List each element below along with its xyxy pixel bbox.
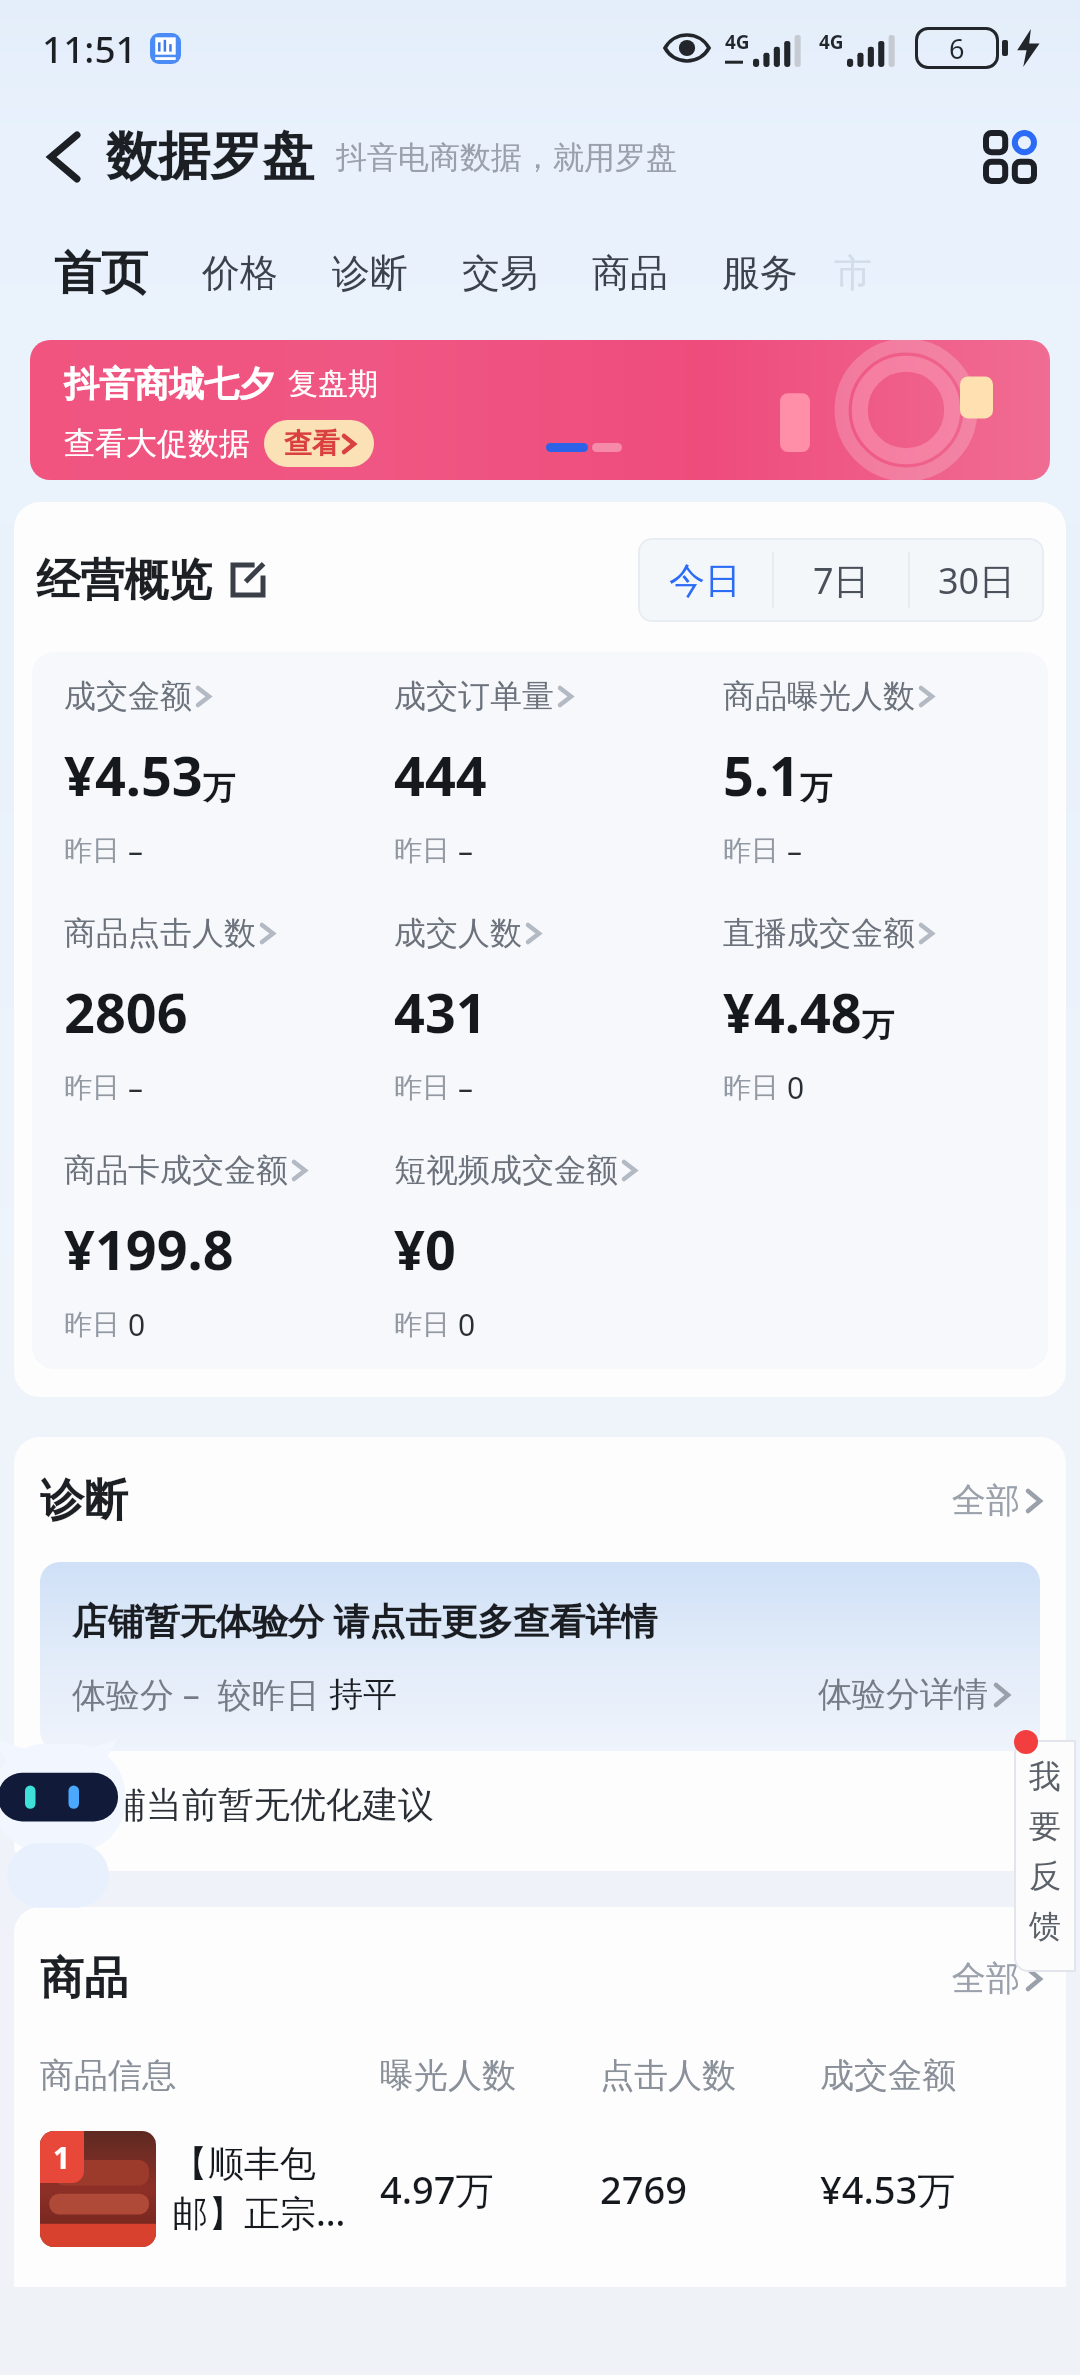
staticText: ¥4.53万 xyxy=(820,2163,1040,2215)
staticText: 昨日 xyxy=(64,833,120,868)
button[interactable]: 30日 xyxy=(910,538,1044,622)
staticText: 431 xyxy=(394,975,487,1049)
staticText: 点击人数 xyxy=(600,2054,820,2097)
staticText: 我 xyxy=(1029,1756,1061,1796)
staticText: 今日 xyxy=(669,558,741,603)
staticText: 商品 xyxy=(592,249,668,297)
staticText: – xyxy=(128,1067,143,1108)
staticText: 复盘期 xyxy=(288,365,378,403)
staticText: 昨日 xyxy=(394,1307,450,1342)
button[interactable]: 价格 xyxy=(182,239,298,307)
staticText: 昨日 xyxy=(394,833,450,868)
staticText: 要 xyxy=(1029,1806,1061,1846)
staticText: 商品曝光人数 xyxy=(723,676,915,716)
staticText: 商品卡成交金额 xyxy=(64,1150,288,1190)
button[interactable]: 今日 xyxy=(638,538,772,622)
staticText: 万 xyxy=(203,768,235,808)
staticText: 7日 xyxy=(813,556,870,605)
staticText: 诊断 xyxy=(40,1473,128,1528)
staticText: 交易 xyxy=(462,249,538,297)
staticText: 查看大促数据 xyxy=(64,424,250,463)
staticText: 抖音商城七夕 xyxy=(64,362,274,406)
button[interactable]: 7日 xyxy=(774,538,908,622)
button[interactable]: Edit xyxy=(226,558,270,602)
staticText: 成交人数 xyxy=(394,913,522,953)
staticText: 查看 xyxy=(284,426,340,461)
button[interactable]: 商品 xyxy=(572,239,688,307)
staticText: 1 xyxy=(53,2137,71,2178)
staticText: 商品 xyxy=(40,1951,128,2006)
staticText: 持平 xyxy=(329,1673,397,1716)
staticText: 首页 xyxy=(54,244,148,303)
staticText: 5.1 xyxy=(723,738,800,812)
button[interactable]: 我 xyxy=(1014,1740,1076,1972)
staticText: – xyxy=(458,830,473,871)
staticText: 全部 xyxy=(952,1479,1020,1522)
staticText: – xyxy=(128,830,143,871)
staticText: ¥4.53 xyxy=(64,738,203,812)
staticText: 商品点击人数 xyxy=(64,913,256,953)
staticText: 4G xyxy=(819,29,844,55)
staticText: 0 xyxy=(787,1067,805,1108)
staticText: 短视频成交金额 xyxy=(394,1150,618,1190)
button[interactable]: 交易 xyxy=(442,239,558,307)
staticText: 数据罗盘 xyxy=(106,124,314,190)
button[interactable]: 1 xyxy=(40,1781,1040,1827)
staticText: 30日 xyxy=(938,556,1016,605)
staticText: 11:51 xyxy=(42,23,137,73)
staticText: 经营概览 xyxy=(36,553,212,608)
staticText: 0 xyxy=(458,1304,476,1345)
staticText: 0 xyxy=(128,1304,146,1345)
staticText: ¥199.8 xyxy=(64,1212,234,1286)
button[interactable]: 诊断 xyxy=(312,239,428,307)
staticText: 6 xyxy=(949,30,965,67)
staticText: 反 xyxy=(1029,1856,1061,1896)
staticText: 店铺暂无体验分 请点击更多查看详情 xyxy=(72,1596,658,1645)
button[interactable]: 全部 xyxy=(952,1957,1040,2000)
staticText: 价格 xyxy=(202,249,278,297)
staticText: 4.97万 xyxy=(380,2163,600,2215)
staticText: 抖音电商数据，就用罗盘 xyxy=(336,138,677,177)
staticText: 昨日 xyxy=(723,833,779,868)
button[interactable]: 服务 xyxy=(702,239,818,307)
staticText: 昨日 xyxy=(64,1307,120,1342)
staticText: 昨日 xyxy=(394,1070,450,1105)
staticText: 4G xyxy=(725,29,750,55)
staticText: 【顺丰包邮】正宗... xyxy=(172,2141,380,2237)
staticText: – xyxy=(787,830,802,871)
button[interactable]: Back xyxy=(34,127,94,187)
staticText: 店铺当前暂无优化建议 xyxy=(74,1782,434,1827)
staticText: 成交金额 xyxy=(820,2054,1040,2097)
staticText: 诊断 xyxy=(332,249,408,297)
button[interactable]: Assistant xyxy=(0,1735,136,1915)
staticText: 服务 xyxy=(722,249,798,297)
button[interactable]: 店铺暂无体验分 请点击更多查看详情 xyxy=(40,1562,1040,1751)
staticText: ¥0 xyxy=(394,1212,456,1286)
staticText: 市 xyxy=(834,249,872,297)
staticText: 444 xyxy=(394,738,487,812)
staticText: – xyxy=(458,1067,473,1108)
staticText: 曝光人数 xyxy=(380,2054,600,2097)
staticText: 馈 xyxy=(1029,1906,1061,1946)
staticText: 体验分 – 较昨日 xyxy=(72,1671,329,1717)
staticText: 体验分详情 xyxy=(818,1673,988,1716)
button[interactable]: 1 xyxy=(40,2131,1040,2247)
button[interactable]: Apps xyxy=(974,121,1046,193)
staticText: ¥4.48 xyxy=(723,975,862,1049)
staticText: 昨日 xyxy=(64,1070,120,1105)
staticText: 商品信息 xyxy=(40,2054,380,2097)
staticText: 全部 xyxy=(952,1957,1020,2000)
staticText: 2769 xyxy=(600,2163,820,2215)
staticText: 成交金额 xyxy=(64,676,192,716)
staticText: 2806 xyxy=(64,975,188,1049)
button[interactable]: 抖音商城七夕 xyxy=(30,340,1050,480)
button[interactable]: 查看 xyxy=(284,426,354,461)
staticText: 直播成交金额 xyxy=(723,913,915,953)
button[interactable]: 全部 xyxy=(952,1479,1040,1522)
button[interactable]: 体验分详情 xyxy=(818,1673,1008,1716)
staticText: 万 xyxy=(800,768,832,808)
staticText: 1 xyxy=(40,1781,60,1827)
staticText: 万 xyxy=(862,1005,894,1045)
button[interactable]: 首页 xyxy=(34,234,168,313)
staticText: 成交订单量 xyxy=(394,676,554,716)
